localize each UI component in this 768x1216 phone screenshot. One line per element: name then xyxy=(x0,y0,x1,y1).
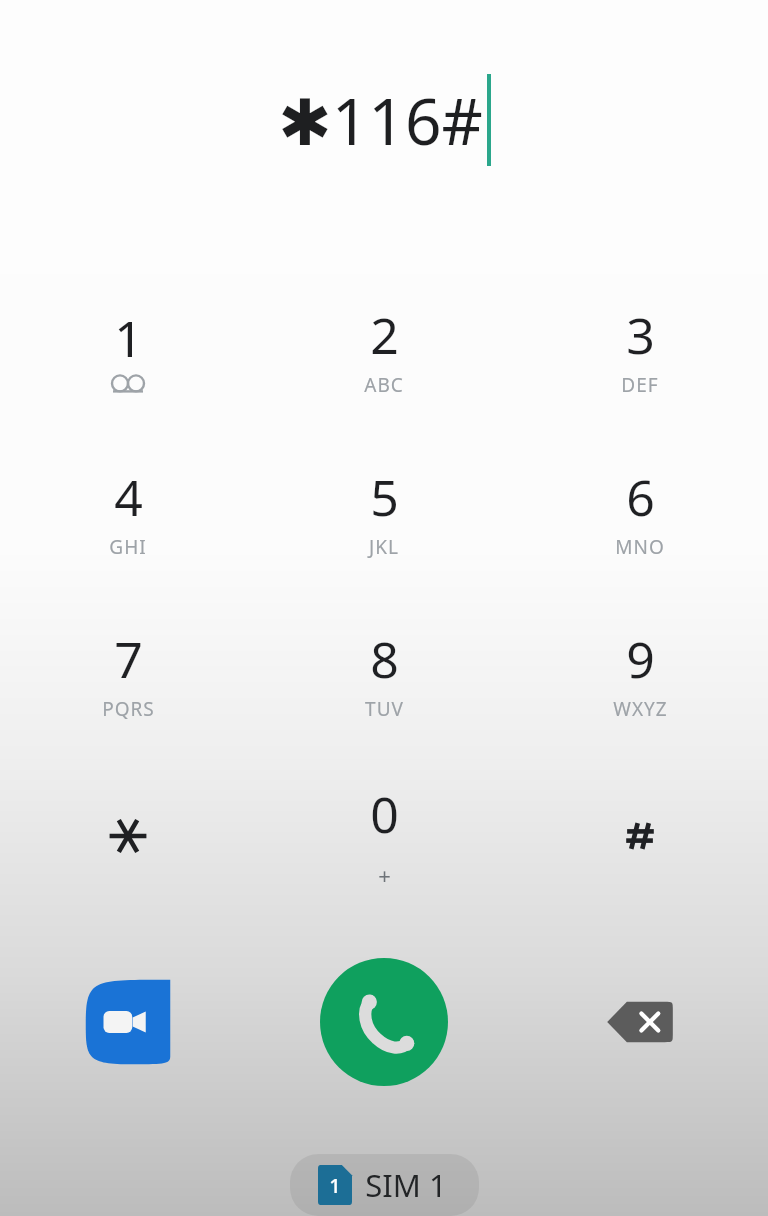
staticText: SIM 1 xyxy=(365,1164,447,1206)
staticText: MNO xyxy=(615,534,665,560)
button[interactable]: 6 xyxy=(512,430,768,592)
button[interactable] xyxy=(0,754,256,916)
button[interactable]: Call xyxy=(320,958,448,1086)
button[interactable]: 3 xyxy=(512,268,768,430)
staticText: 5 xyxy=(370,463,399,531)
button[interactable] xyxy=(512,754,768,916)
staticText: 3 xyxy=(626,301,655,369)
staticText: + xyxy=(378,860,391,890)
staticText: ✱116# xyxy=(278,77,483,164)
staticText: 6 xyxy=(626,463,655,531)
staticText: 7 xyxy=(114,625,143,693)
button[interactable]: 7 xyxy=(0,592,256,754)
staticText: 9 xyxy=(626,625,655,693)
staticText: 4 xyxy=(114,463,143,531)
staticText: PQRS xyxy=(102,696,155,722)
staticText: GHI xyxy=(109,534,147,560)
button[interactable]: 4 xyxy=(0,430,256,592)
staticText: DEF xyxy=(621,372,659,398)
button[interactable]: Backspace xyxy=(590,972,690,1072)
staticText: ABC xyxy=(364,372,404,398)
staticText: 1 xyxy=(114,304,143,372)
button[interactable]: 1 xyxy=(0,268,256,430)
button[interactable]: 0 xyxy=(256,754,512,916)
button[interactable]: 9 xyxy=(512,592,768,754)
staticText: 0 xyxy=(370,780,399,848)
button[interactable]: 8 xyxy=(256,592,512,754)
staticText: TUV xyxy=(365,696,404,722)
button[interactable]: 2 xyxy=(256,268,512,430)
staticText: 2 xyxy=(370,301,399,369)
staticText: JKL xyxy=(369,534,399,560)
staticText: 1 xyxy=(329,1172,341,1199)
staticText: WXYZ xyxy=(613,696,668,722)
button[interactable]: 1 xyxy=(290,1154,479,1216)
button[interactable]: Video call xyxy=(78,972,178,1072)
staticText: 8 xyxy=(370,625,399,693)
button[interactable]: 5 xyxy=(256,430,512,592)
